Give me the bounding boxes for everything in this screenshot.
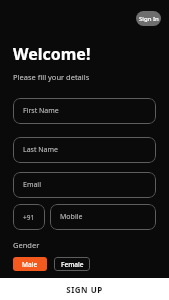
staticText: First Name	[23, 106, 59, 116]
staticText: Male	[22, 260, 38, 269]
button[interactable]: Last Name	[13, 137, 156, 163]
staticText: Sign In	[139, 15, 159, 23]
button[interactable]: SIGN UP	[0, 278, 169, 300]
button[interactable]: +91	[13, 204, 45, 230]
staticText: Welcome!	[13, 43, 91, 65]
button[interactable]: First Name	[13, 98, 156, 124]
staticText: Female	[61, 260, 84, 269]
button[interactable]: Male	[13, 257, 47, 271]
button[interactable]: Female	[54, 257, 90, 271]
staticText: Gender	[13, 240, 40, 250]
staticText: SIGN UP	[66, 284, 103, 295]
staticText: Please fill your details	[13, 72, 90, 82]
button[interactable]: Email	[13, 172, 156, 198]
staticText: +91	[23, 213, 35, 222]
button[interactable]: Sign In	[136, 11, 161, 26]
staticText: Email	[23, 180, 41, 190]
button[interactable]: Mobile	[50, 204, 156, 230]
staticText: Last Name	[23, 145, 59, 155]
staticText: Mobile	[60, 212, 83, 222]
